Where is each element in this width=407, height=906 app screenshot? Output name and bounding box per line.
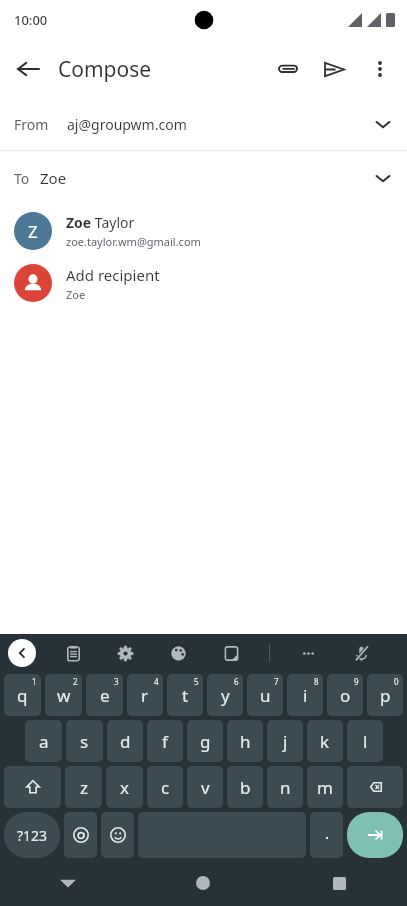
button[interactable]: w [45, 674, 82, 716]
button[interactable]: At sign [64, 812, 97, 858]
staticText: y [221, 684, 230, 707]
button[interactable]: Period [310, 812, 343, 858]
button[interactable]: e [86, 674, 123, 716]
staticText: h [240, 730, 251, 753]
staticText: f [162, 730, 168, 753]
staticText: l [363, 730, 368, 753]
staticText: g [200, 730, 211, 753]
staticText: 1 [32, 676, 37, 687]
staticText: Z [28, 220, 38, 243]
staticText: v [201, 776, 210, 799]
button[interactable]: Add recipient [0, 257, 407, 309]
button[interactable]: f [147, 720, 183, 762]
button[interactable]: q [4, 674, 41, 716]
button[interactable]: h [227, 720, 263, 762]
staticText: k [320, 730, 330, 753]
button[interactable]: Sticker [216, 638, 246, 668]
staticText: ?123 [17, 826, 48, 845]
staticText: w [57, 684, 71, 707]
button[interactable]: v [187, 766, 223, 808]
button[interactable]: Enter [347, 812, 403, 858]
staticText: a [39, 730, 49, 753]
button[interactable]: o [327, 674, 363, 716]
button[interactable]: u [247, 674, 283, 716]
button[interactable]: i [287, 674, 323, 716]
button[interactable]: Clipboard [58, 638, 88, 668]
button[interactable]: Send [311, 46, 357, 92]
button[interactable]: More [293, 638, 323, 668]
button[interactable]: c [147, 766, 183, 808]
button[interactable]: Home [135, 860, 271, 906]
staticText: n [280, 776, 291, 799]
staticText: c [161, 776, 170, 799]
button[interactable]: Voice input off [346, 638, 376, 668]
button[interactable]: More options [357, 46, 403, 92]
staticText: 5 [194, 676, 199, 687]
button[interactable]: j [267, 720, 303, 762]
staticText: 0 [394, 676, 399, 687]
button[interactable]: m [307, 766, 343, 808]
button[interactable]: Backspace [347, 766, 403, 808]
staticText: 7 [274, 676, 279, 687]
staticText: Compose [58, 55, 152, 84]
button[interactable]: Attach [265, 46, 311, 92]
staticText: To [14, 169, 30, 188]
button[interactable]: a [25, 720, 62, 762]
button[interactable]: Z [0, 205, 407, 257]
button[interactable]: x [106, 766, 143, 808]
staticText: 2 [73, 676, 78, 687]
staticText: j [283, 730, 288, 753]
staticText: Add recipient [66, 265, 160, 285]
staticText: m [317, 776, 333, 799]
staticText: e [100, 684, 110, 707]
button[interactable]: Back [0, 860, 135, 906]
button[interactable]: Emoji [101, 812, 134, 858]
staticText: q [17, 684, 28, 707]
button[interactable]: Recents [271, 860, 407, 906]
button[interactable]: r [127, 674, 163, 716]
staticText: aj@groupwm.com [67, 115, 187, 134]
button[interactable]: Shift [4, 766, 61, 808]
staticText: 6 [234, 676, 239, 687]
button[interactable]: ?123 [4, 812, 60, 858]
staticText: 4 [154, 676, 159, 687]
button[interactable]: k [307, 720, 343, 762]
button[interactable]: d [107, 720, 143, 762]
button[interactable]: p [367, 674, 403, 716]
staticText: s [80, 730, 89, 753]
staticText: x [120, 776, 129, 799]
button[interactable]: Theme [163, 638, 193, 668]
staticText: 10:00 [14, 11, 48, 29]
staticText: o [340, 684, 351, 707]
staticText: i [303, 684, 308, 707]
staticText: zoe.taylor.wm@gmail.com [66, 234, 201, 249]
staticText: r [141, 684, 149, 707]
button[interactable]: Settings [110, 638, 140, 668]
button[interactable]: Expand [8, 639, 36, 667]
button[interactable]: From [0, 98, 407, 150]
button[interactable]: g [187, 720, 223, 762]
staticText: d [120, 730, 131, 753]
button[interactable]: l [347, 720, 383, 762]
staticText: 8 [314, 676, 319, 687]
staticText: Zoe [66, 287, 86, 302]
button[interactable]: b [227, 766, 263, 808]
button[interactable]: n [267, 766, 303, 808]
button[interactable]: t [167, 674, 203, 716]
staticText: t [182, 684, 189, 707]
staticText: 3 [114, 676, 119, 687]
staticText: b [240, 776, 251, 799]
staticText: 9 [354, 676, 359, 687]
staticText: u [260, 684, 271, 707]
staticText: z [80, 776, 88, 799]
button[interactable]: s [66, 720, 103, 762]
staticText: Zoe [40, 168, 67, 188]
staticText: Zoe Taylor [66, 213, 135, 232]
button[interactable]: To [0, 151, 407, 205]
staticText: From [14, 115, 49, 134]
staticText: p [380, 684, 391, 707]
button[interactable]: z [65, 766, 102, 808]
button[interactable]: Back [4, 45, 52, 93]
button[interactable]: y [207, 674, 243, 716]
